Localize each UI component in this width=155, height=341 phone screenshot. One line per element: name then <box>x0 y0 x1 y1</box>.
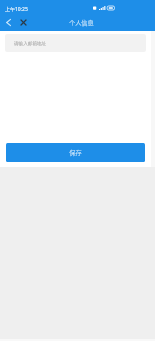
button[interactable]: Back <box>1 15 16 30</box>
staticText: 个人信息 <box>69 18 94 27</box>
button[interactable]: Close <box>16 15 31 30</box>
button[interactable]: 请输入邮箱地址 <box>5 34 146 52</box>
staticText: 请输入邮箱地址 <box>14 41 47 47</box>
staticText: 上午10:25 <box>5 6 28 13</box>
staticText: 保存 <box>69 148 82 157</box>
button[interactable]: 保存 <box>6 143 145 162</box>
